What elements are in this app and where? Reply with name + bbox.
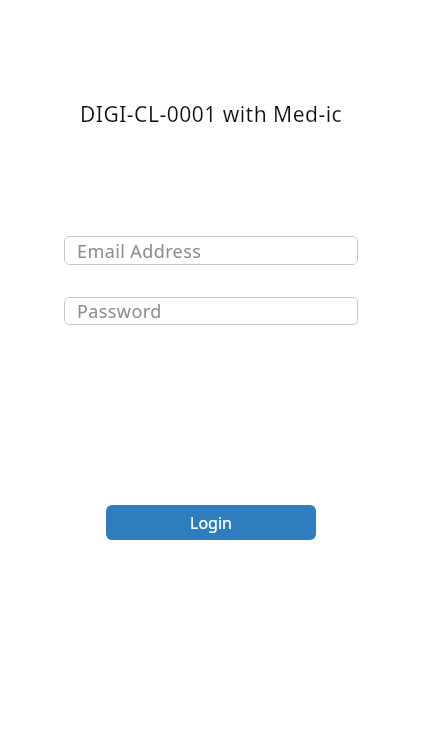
staticText: Login: [190, 512, 232, 534]
staticText: Email Address: [77, 239, 202, 264]
staticText: Password: [77, 299, 162, 324]
staticText: DIGI-CL-0001 with Med-ic: [80, 100, 343, 126]
